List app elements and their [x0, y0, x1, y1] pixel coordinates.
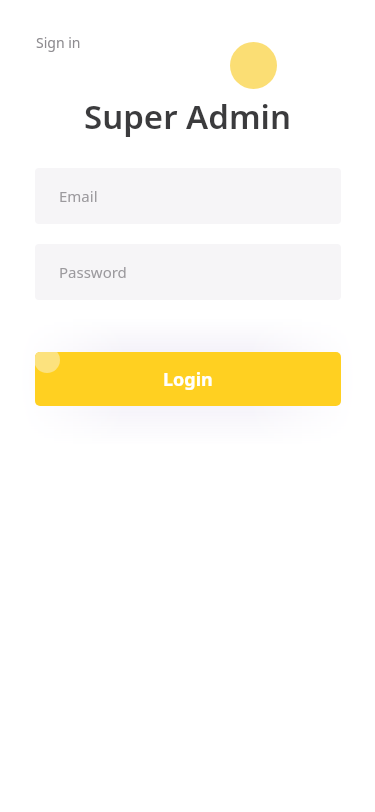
button[interactable]: Login — [35, 352, 341, 406]
staticText: Email — [59, 186, 98, 206]
staticText: Login — [163, 367, 213, 392]
button[interactable]: Email — [35, 168, 341, 224]
staticText: Super Admin — [0, 94, 375, 139]
button[interactable]: Password — [35, 244, 341, 300]
button[interactable]: Sign in — [35, 31, 82, 54]
staticText: Sign in — [36, 33, 81, 52]
staticText: Password — [59, 262, 127, 282]
